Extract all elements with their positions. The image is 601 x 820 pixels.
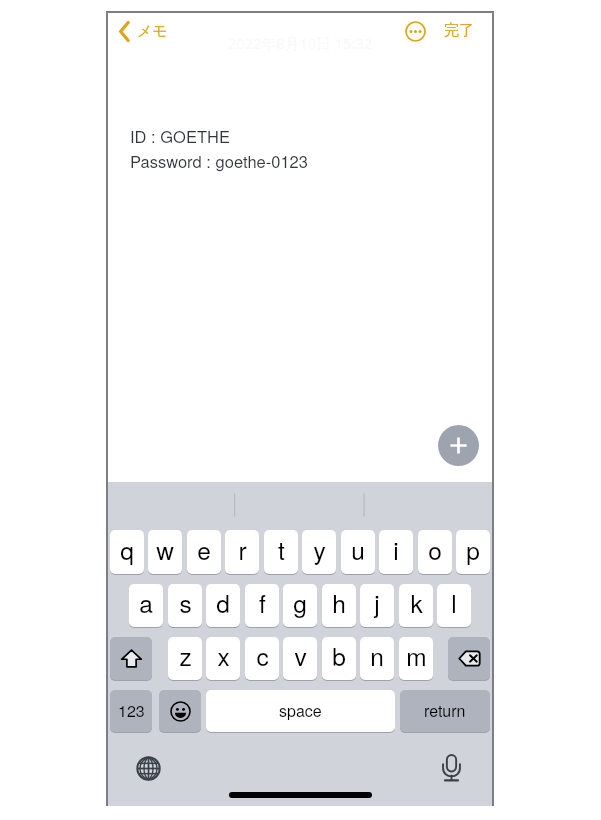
button[interactable]: Delete [448, 637, 490, 680]
staticText: u [351, 532, 365, 567]
staticText: p [466, 532, 480, 567]
button[interactable]: s [168, 584, 202, 627]
staticText: w [156, 532, 174, 567]
staticText: q [120, 532, 134, 567]
staticText: v [294, 638, 307, 673]
staticText: h [332, 585, 346, 620]
button[interactable]: c [245, 637, 279, 680]
button[interactable]: a [129, 584, 163, 627]
button[interactable]: r [225, 530, 259, 574]
button[interactable]: x [206, 637, 240, 680]
button[interactable]: Dictate [442, 754, 461, 782]
staticText: x [217, 638, 230, 673]
staticText: 123 [118, 699, 145, 722]
staticText: space [279, 699, 322, 722]
staticText: 完了 [444, 21, 474, 40]
button[interactable]: p [456, 530, 490, 574]
staticText: return [424, 699, 466, 722]
button[interactable]: Emoji [159, 690, 201, 732]
staticText: f [259, 585, 266, 620]
button[interactable]: Change keyboard [136, 756, 161, 781]
button[interactable]: 123 [110, 690, 152, 732]
button[interactable]: o [418, 530, 452, 574]
button[interactable]: i [379, 530, 413, 574]
button[interactable]: t [264, 530, 298, 574]
button[interactable]: n [360, 637, 394, 680]
staticText: i [393, 532, 399, 567]
button[interactable]: u [341, 530, 375, 574]
staticText: r [238, 532, 247, 567]
button[interactable]: q [110, 530, 144, 574]
button[interactable]: Add note [438, 425, 479, 466]
staticText: l [451, 585, 457, 620]
button[interactable]: Shift [110, 637, 152, 680]
button[interactable]: z [168, 637, 202, 680]
button[interactable]: h [322, 584, 356, 627]
staticText: k [410, 585, 423, 620]
button[interactable]: メモ [117, 19, 168, 44]
button[interactable]: More options [405, 21, 426, 42]
staticText: Password : goethe-0123 [130, 149, 308, 173]
button[interactable]: return [400, 690, 490, 732]
staticText: メモ [137, 22, 168, 41]
staticText: o [428, 532, 442, 567]
button[interactable]: j [360, 584, 394, 627]
staticText: ID : GOETHE [130, 124, 230, 148]
staticText: d [216, 585, 230, 620]
button[interactable]: v [283, 637, 317, 680]
staticText: s [179, 585, 192, 620]
button[interactable]: g [283, 584, 317, 627]
staticText: g [293, 585, 307, 620]
button[interactable]: f [245, 584, 279, 627]
button[interactable]: d [206, 584, 240, 627]
staticText: b [332, 638, 346, 673]
staticText: j [374, 585, 380, 620]
button[interactable]: space [206, 690, 395, 732]
button[interactable]: b [322, 637, 356, 680]
staticText: c [256, 638, 269, 673]
button[interactable]: w [148, 530, 182, 574]
staticText: n [370, 638, 384, 673]
button[interactable]: 完了 [444, 21, 474, 40]
staticText: t [278, 532, 285, 567]
button[interactable]: k [399, 584, 433, 627]
button[interactable]: m [399, 637, 433, 680]
button[interactable]: l [437, 584, 471, 627]
button[interactable]: e [187, 530, 221, 574]
staticText: a [139, 585, 153, 620]
button[interactable]: y [302, 530, 336, 574]
staticText: m [406, 638, 427, 673]
staticText: y [313, 532, 326, 567]
staticText: z [179, 638, 192, 673]
staticText: e [197, 532, 211, 567]
